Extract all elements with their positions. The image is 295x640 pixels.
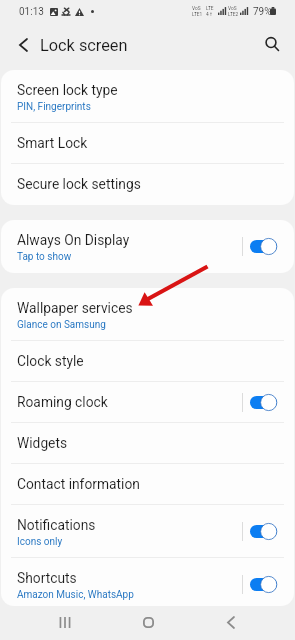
button[interactable]: Toggle (250, 394, 277, 411)
staticText: Shortcuts (17, 570, 77, 586)
staticText: 01:13 (19, 6, 44, 18)
staticText: LTE1 (192, 12, 203, 18)
button[interactable]: Back (8, 30, 37, 59)
staticText: Always On Display (17, 232, 130, 248)
button[interactable]: Smart Lock (1, 123, 294, 164)
button[interactable]: Search (258, 30, 287, 59)
staticText: Glance on Samsung (17, 319, 106, 331)
button[interactable]: Shortcuts (1, 558, 294, 606)
button[interactable]: Screen lock type (1, 70, 294, 123)
button[interactable]: Roaming clock (1, 382, 294, 423)
staticText: VoS (228, 6, 237, 12)
button[interactable]: Recent apps (45, 605, 85, 639)
staticText: LTE2 (228, 12, 239, 18)
button[interactable]: Secure lock settings (1, 164, 294, 205)
button[interactable]: Toggle (250, 576, 277, 593)
staticText: LTE (206, 6, 214, 12)
button[interactable]: Contact information (1, 464, 294, 505)
staticText: Roaming clock (17, 394, 108, 410)
staticText: Icons only (17, 536, 63, 548)
button[interactable]: Home (128, 605, 168, 639)
staticText: VoS (192, 6, 201, 12)
button[interactable]: Wallpaper services (1, 288, 294, 341)
button[interactable]: Back (210, 605, 250, 639)
button[interactable]: Notifications (1, 505, 294, 558)
staticText: 4↑ (206, 12, 213, 18)
staticText: 79% (253, 6, 272, 18)
staticText: Contact information (17, 476, 140, 492)
staticText: PIN, Fingerprints (17, 101, 91, 113)
staticText: Wallpaper services (17, 300, 133, 316)
button[interactable]: Widgets (1, 423, 294, 464)
staticText: Lock screen (40, 36, 128, 55)
button[interactable]: Toggle (250, 238, 277, 255)
staticText: Widgets (17, 435, 68, 451)
staticText: Notifications (17, 517, 96, 533)
staticText: Secure lock settings (17, 176, 141, 192)
staticText: Smart Lock (17, 135, 88, 151)
button[interactable]: Toggle (250, 523, 277, 540)
staticText: Amazon Music, WhatsApp (17, 589, 134, 601)
staticText: Clock style (17, 353, 84, 369)
button[interactable]: Always On Display (1, 220, 294, 273)
button[interactable]: Clock style (1, 341, 294, 382)
staticText: Screen lock type (17, 82, 118, 98)
staticText: Tap to show (17, 251, 72, 263)
